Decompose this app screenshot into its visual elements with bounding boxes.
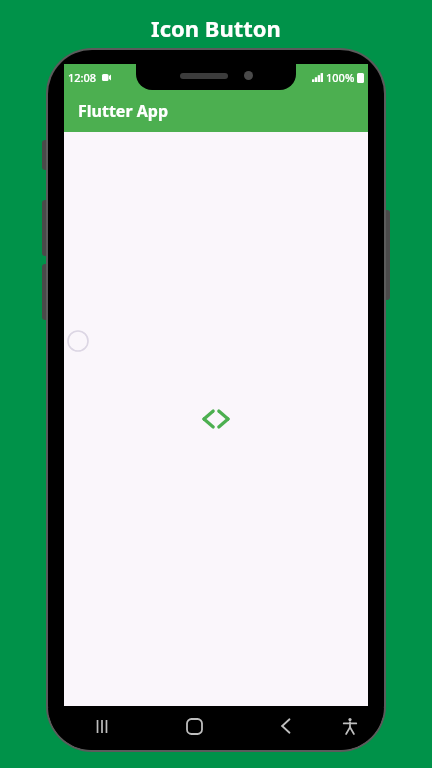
button[interactable]: Recents bbox=[85, 709, 119, 743]
button[interactable]: Home bbox=[177, 709, 211, 743]
button[interactable]: Accessibility bbox=[333, 709, 367, 743]
staticText: 12:08 bbox=[68, 70, 97, 85]
staticText: Flutter App bbox=[78, 100, 169, 122]
staticText: 100% bbox=[326, 70, 355, 85]
button[interactable]: Code bbox=[192, 395, 240, 443]
button[interactable]: Back bbox=[269, 709, 303, 743]
staticText: Icon Button bbox=[151, 13, 281, 43]
